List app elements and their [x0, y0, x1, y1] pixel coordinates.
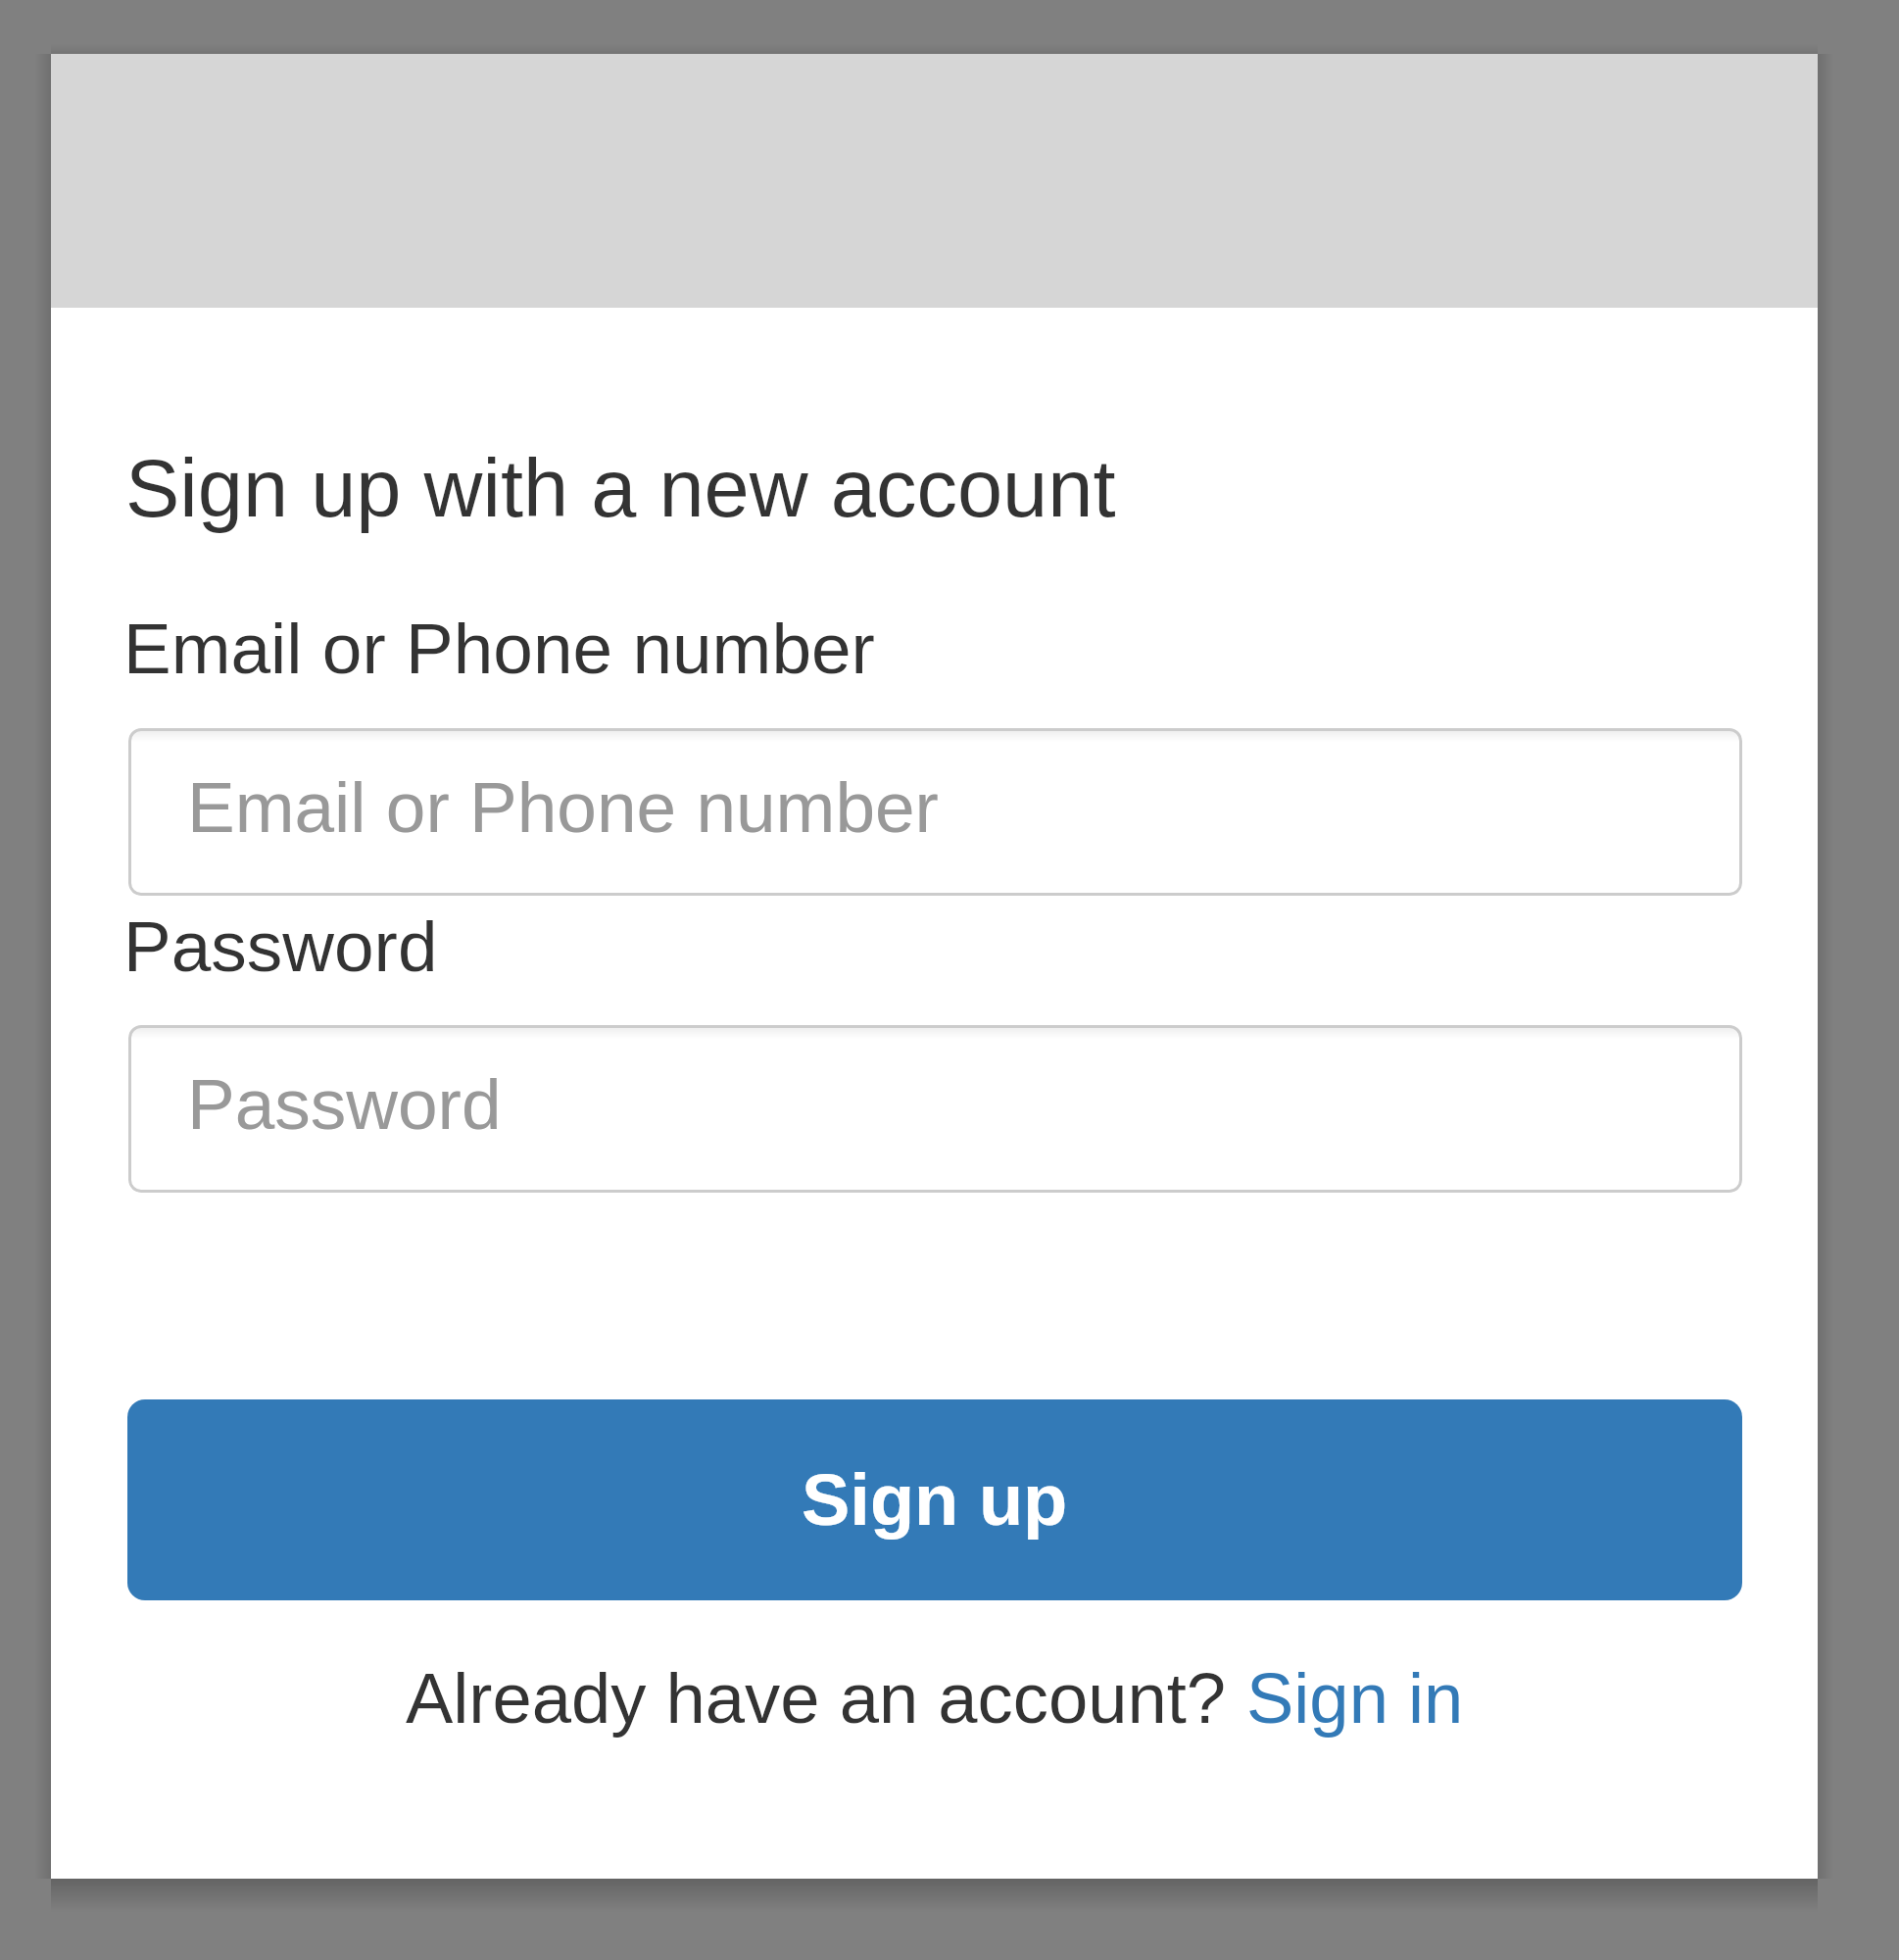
button[interactable]: Sign up	[127, 1399, 1742, 1600]
staticText: Sign up	[802, 1459, 1068, 1541]
staticText: Email or Phone number	[123, 609, 875, 689]
staticText: Password	[187, 1064, 502, 1145]
staticText: Password	[123, 906, 438, 987]
button[interactable]: Sign in	[1246, 1658, 1464, 1738]
staticText: Sign up with a new account	[125, 443, 1116, 534]
staticText: Sign in	[1246, 1658, 1464, 1738]
button[interactable]: Password	[128, 1025, 1742, 1193]
button[interactable]: Email or Phone number	[128, 728, 1742, 896]
staticText: Already have an account?	[406, 1658, 1246, 1738]
staticText: Email or Phone number	[187, 767, 939, 848]
